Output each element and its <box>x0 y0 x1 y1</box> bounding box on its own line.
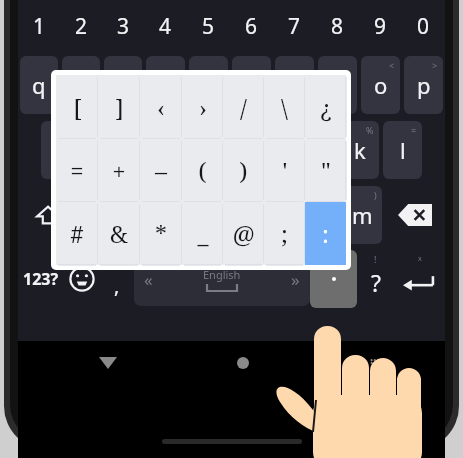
staticText: = <box>70 154 84 187</box>
button[interactable]: y <box>232 56 271 114</box>
button[interactable]: v <box>210 186 250 244</box>
staticText: k <box>354 135 366 165</box>
button[interactable]: ] <box>98 75 140 139</box>
staticText: u <box>288 70 302 100</box>
staticText: + <box>112 154 126 187</box>
staticText: 5 <box>202 12 215 41</box>
staticText: z <box>94 200 105 230</box>
button[interactable]: \ <box>264 75 305 139</box>
button[interactable]: ' <box>264 139 305 202</box>
button[interactable]: i <box>318 56 357 114</box>
button[interactable]: « <box>134 252 310 306</box>
button[interactable]: @ <box>223 202 264 265</box>
button[interactable]: & <box>98 202 140 265</box>
button[interactable]: * <box>140 202 182 265</box>
staticText: ] <box>115 91 124 124</box>
button[interactable]: " <box>305 139 346 202</box>
staticText: l <box>400 135 406 165</box>
button[interactable]: ! <box>357 249 394 309</box>
staticText: t <box>205 70 213 100</box>
staticText: « <box>144 268 153 291</box>
staticText: _ <box>197 217 209 250</box>
button[interactable]: – <box>140 139 182 202</box>
button[interactable]: Enter <box>394 249 445 309</box>
button[interactable]: 5 <box>187 0 230 52</box>
button[interactable]: j <box>297 121 336 179</box>
button[interactable]: Shift <box>18 184 78 246</box>
button[interactable]: # <box>56 202 98 265</box>
button[interactable]: ; <box>264 202 305 265</box>
button[interactable]: f <box>168 121 207 179</box>
button[interactable]: > <box>404 56 443 114</box>
staticText: 0 <box>417 12 430 41</box>
button[interactable]: ) <box>223 139 264 202</box>
button[interactable]: 8 <box>316 0 359 52</box>
button[interactable]: Keyboard <box>341 341 414 385</box>
button[interactable]: 123? <box>18 249 63 309</box>
button[interactable]: h <box>254 121 293 179</box>
staticText: o <box>374 70 388 100</box>
button[interactable]: w <box>62 56 100 114</box>
button[interactable]: 0 <box>402 0 445 52</box>
button[interactable]: _ <box>182 202 223 265</box>
button[interactable]: ‹ <box>140 75 182 139</box>
staticText: " <box>321 154 331 187</box>
button[interactable]: d <box>125 121 164 179</box>
button[interactable]: r <box>146 56 185 114</box>
button[interactable]: / <box>223 75 264 139</box>
button[interactable]: [ <box>56 75 98 139</box>
staticText: * <box>155 217 167 250</box>
button[interactable]: 6 <box>230 0 273 52</box>
button[interactable]: 9 <box>359 0 402 52</box>
staticText: ) <box>374 189 377 201</box>
button[interactable]: › <box>182 75 223 139</box>
staticText: 2 <box>75 12 88 41</box>
button[interactable]: z <box>80 186 119 244</box>
staticText: – <box>155 154 167 187</box>
staticText: n <box>311 200 325 230</box>
staticText: 7 <box>288 12 301 41</box>
button[interactable]: < <box>361 56 400 114</box>
button[interactable]: ) <box>342 186 382 244</box>
staticText: 8 <box>331 12 344 41</box>
button[interactable]: b <box>254 186 294 244</box>
button[interactable]: ... <box>310 250 357 308</box>
button[interactable]: e <box>104 56 142 114</box>
staticText: m <box>352 200 373 230</box>
button[interactable]: 1 <box>18 0 60 52</box>
button[interactable]: Home <box>206 341 279 385</box>
button[interactable]: q <box>20 56 58 114</box>
staticText: English <box>203 267 241 282</box>
button[interactable]: n <box>298 186 338 244</box>
staticText: y <box>246 70 258 100</box>
button[interactable]: x <box>123 186 162 244</box>
button[interactable]: Emoji <box>63 249 100 309</box>
button[interactable]: Comma, voice input <box>100 249 134 309</box>
button[interactable]: s <box>83 121 121 179</box>
button[interactable]: 2 <box>60 0 102 52</box>
button[interactable]: ( <box>182 139 223 202</box>
button[interactable]: u <box>275 56 314 114</box>
staticText: ) <box>239 154 248 187</box>
staticText: x <box>137 200 149 230</box>
button[interactable]: Backspace <box>384 184 445 246</box>
button[interactable]: 7 <box>273 0 316 52</box>
button[interactable]: Back <box>71 341 144 385</box>
button[interactable]: a <box>41 121 79 179</box>
staticText: d <box>138 135 152 165</box>
button[interactable]: + <box>98 139 140 202</box>
staticText: c <box>181 200 192 230</box>
staticText: i <box>335 70 341 100</box>
button[interactable]: ¿ <box>305 75 346 139</box>
button[interactable]: 3 <box>102 0 144 52</box>
button[interactable]: = <box>383 121 422 179</box>
button[interactable]: 4 <box>144 0 187 52</box>
button[interactable]: g <box>211 121 250 179</box>
button[interactable]: = <box>56 139 98 202</box>
button[interactable]: : <box>305 202 346 265</box>
button[interactable]: t <box>189 56 228 114</box>
button[interactable]: % <box>340 121 379 179</box>
staticText: ‹ <box>157 91 165 124</box>
